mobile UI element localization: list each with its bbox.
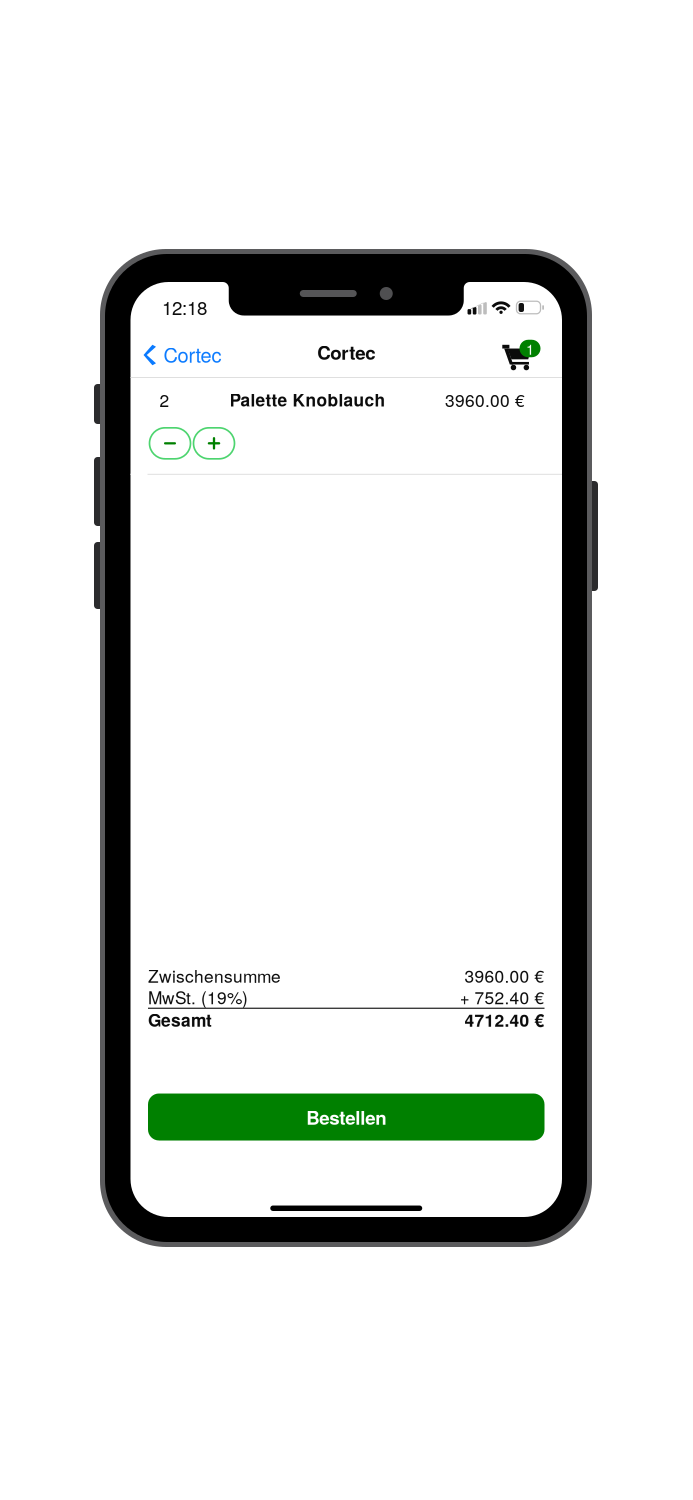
button[interactable]: Increase quantity <box>193 428 234 459</box>
staticText: Palette Knoblauch <box>229 387 385 412</box>
staticText: + 752.40 € <box>459 984 544 1009</box>
staticText: 12:18 <box>162 294 207 320</box>
staticText: Bestellen <box>306 1104 386 1130</box>
staticText: Cortec <box>163 340 221 368</box>
button[interactable]: Shopping cart, 1 item <box>496 327 562 377</box>
button[interactable]: Decrease quantity <box>149 428 190 459</box>
staticText: Gesamt <box>148 1007 212 1032</box>
staticText: 4712.40 € <box>464 1007 544 1032</box>
staticText: 1 <box>526 338 534 359</box>
button[interactable]: Bestellen <box>148 1093 544 1140</box>
staticText: 3960.00 € <box>464 963 544 988</box>
staticText: Cortec <box>317 339 375 365</box>
staticText: Zwischensumme <box>148 963 281 988</box>
staticText: 2 <box>159 387 169 412</box>
staticText: 3960.00 € <box>445 387 525 412</box>
staticText: MwSt. (19%) <box>148 984 248 1009</box>
button[interactable]: Cortec <box>130 327 233 377</box>
